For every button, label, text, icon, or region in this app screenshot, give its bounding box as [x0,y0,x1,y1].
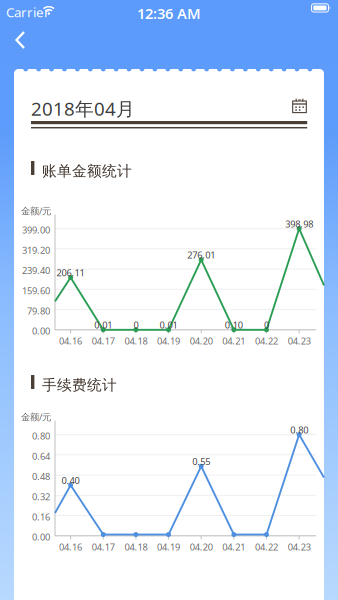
staticText: 398.98 [285,218,313,230]
staticText: 04.23 [288,541,311,553]
staticText: 239.40 [22,264,50,276]
staticText: 04.21 [222,541,245,553]
staticText: 04.20 [190,541,213,553]
staticText: 0 [133,319,138,331]
staticText: 0.80 [32,430,50,442]
staticText: 0.00 [32,325,50,337]
staticText: 0 [264,319,269,331]
staticText: 0.01 [159,319,177,331]
staticText: 04.21 [222,335,245,347]
staticText: 159.60 [22,284,50,297]
staticText: 0.10 [225,319,243,331]
staticText: 金额/元 [21,411,51,423]
staticText: 0.01 [94,319,112,331]
staticText: Carrier [6,3,50,21]
staticText: 04.16 [59,541,82,553]
staticText: 手续费统计 [42,376,117,394]
staticText: 0.32 [32,490,50,503]
staticText: 04.17 [92,335,115,347]
staticText: 04.17 [92,541,115,553]
staticText: 04.19 [157,335,180,347]
staticText: 04.23 [288,335,311,347]
staticText: 金额/元 [21,205,51,217]
staticText: 04.22 [255,541,278,553]
staticText: 2018年04月 [31,96,135,121]
staticText: 04.19 [157,541,180,553]
staticText: 0.00 [32,531,50,543]
staticText: 04.18 [124,541,147,553]
staticText: 206.11 [57,266,85,279]
staticText: 276.01 [187,249,215,261]
staticText: 399.00 [22,224,50,236]
staticText: 79.80 [27,305,50,317]
staticText: 04.18 [124,335,147,347]
staticText: 账单金额统计 [42,162,132,180]
staticText: 04.16 [59,335,82,347]
staticText: 0.48 [32,470,50,482]
staticText: 0.40 [62,474,80,487]
staticText: 0.80 [290,424,308,436]
staticText: 0.64 [32,450,50,462]
staticText: 04.22 [255,335,278,347]
button[interactable]: Pick month [286,92,313,119]
button[interactable]: Back [8,24,48,56]
staticText: 0.55 [192,455,210,468]
staticText: 0.16 [32,511,50,523]
staticText: 04.20 [190,335,213,347]
staticText: 319.20 [22,244,50,256]
staticText: 12:36 AM [137,3,201,23]
